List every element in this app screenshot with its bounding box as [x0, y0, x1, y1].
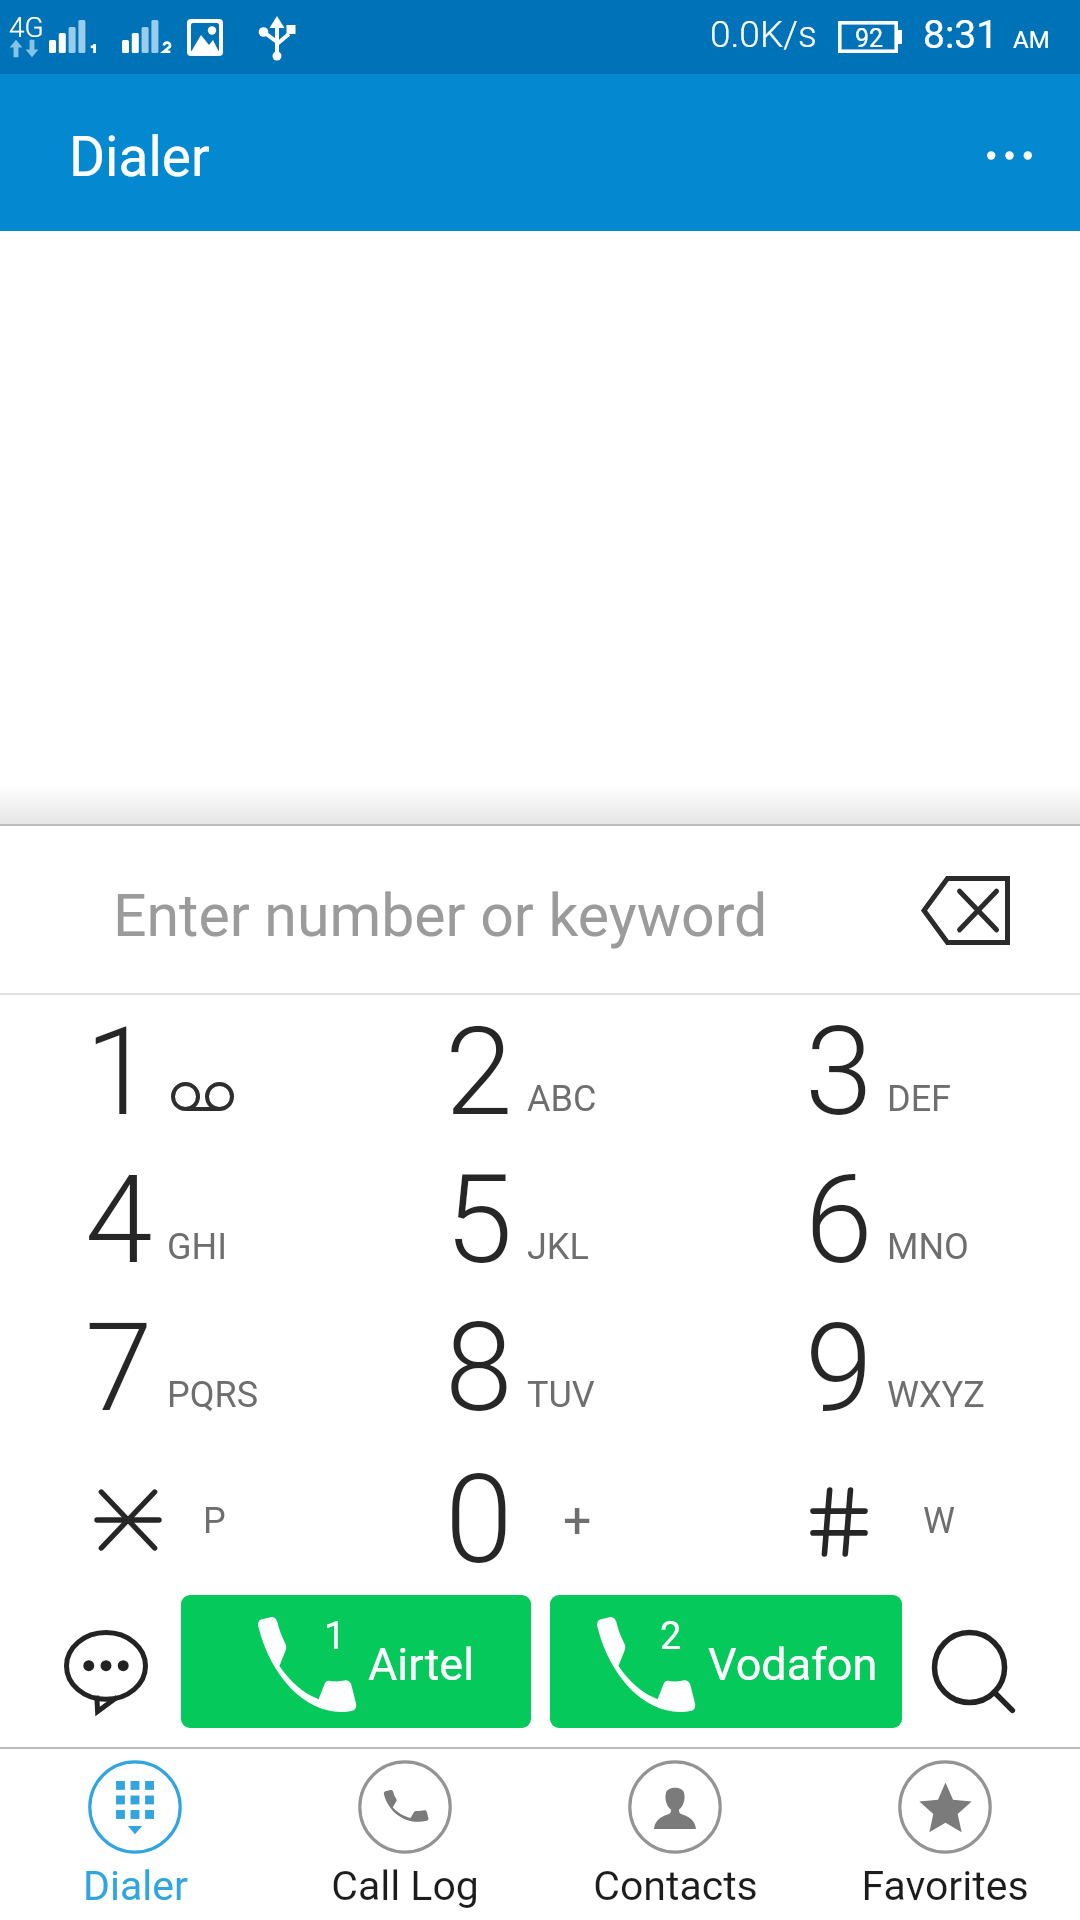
button[interactable]: 7 — [0, 1294, 360, 1442]
button[interactable]: 3 — [720, 998, 1080, 1146]
staticText: WXYZ — [887, 1374, 985, 1416]
staticText: 92 — [855, 24, 884, 53]
staticText: TUV — [527, 1374, 595, 1416]
staticText: ABC — [527, 1078, 597, 1120]
staticText: Contacts — [593, 1862, 758, 1910]
staticText: 1 — [324, 1614, 346, 1659]
button[interactable]: 5 — [360, 1146, 720, 1294]
staticText: PQRS — [167, 1374, 259, 1416]
staticText: 0.0K/s — [710, 13, 817, 56]
staticText: JKL — [527, 1226, 589, 1268]
button[interactable]: Backspace — [900, 850, 1030, 970]
staticText: Enter number or keyword — [113, 881, 768, 950]
staticText: GHI — [167, 1226, 227, 1268]
staticText: 2 — [445, 1001, 513, 1144]
button[interactable]: More options — [949, 92, 1069, 218]
staticText: 7 — [85, 1297, 153, 1440]
button[interactable]: Favorites — [810, 1749, 1080, 1920]
button[interactable]: Dialer — [0, 1749, 270, 1920]
staticText: 4 — [85, 1149, 153, 1292]
staticText: W — [923, 1500, 955, 1542]
button[interactable]: 1 — [181, 1595, 531, 1728]
button[interactable]: Call Log — [270, 1749, 540, 1920]
staticText: AM — [1013, 26, 1050, 54]
staticText: 5 — [445, 1149, 513, 1292]
staticText: Favorites — [861, 1862, 1029, 1910]
staticText: 3 — [805, 1001, 873, 1144]
staticText: 4G — [9, 11, 44, 44]
button[interactable]: P — [0, 1446, 360, 1594]
button[interactable]: 2 — [550, 1595, 902, 1728]
button[interactable]: Enter number or keyword — [0, 831, 1080, 991]
staticText: Call Log — [331, 1862, 479, 1910]
staticText: DEF — [887, 1078, 951, 1120]
staticText: 2 — [660, 1614, 682, 1659]
staticText: 0 — [445, 1449, 513, 1592]
staticText: 6 — [805, 1149, 873, 1292]
staticText: 1 — [85, 1001, 153, 1144]
staticText: Vodafon — [708, 1638, 878, 1691]
staticText: 9 — [805, 1297, 873, 1440]
staticText: MNO — [887, 1226, 969, 1268]
button[interactable]: 9 — [720, 1294, 1080, 1442]
staticText: Dialer — [83, 1862, 188, 1910]
staticText: + — [563, 1492, 592, 1551]
button[interactable]: 2 — [360, 998, 720, 1146]
button[interactable]: 6 — [720, 1146, 1080, 1294]
button[interactable]: 0 — [360, 1446, 720, 1594]
button[interactable]: W — [720, 1446, 1080, 1594]
staticText: P — [203, 1500, 226, 1542]
staticText: 8:31 — [923, 12, 999, 58]
button[interactable]: 8 — [360, 1294, 720, 1442]
button[interactable]: Messages — [30, 1600, 180, 1740]
staticText: Airtel — [368, 1638, 475, 1691]
button[interactable]: Contacts — [540, 1749, 810, 1920]
button[interactable]: 4 — [0, 1146, 360, 1294]
button[interactable]: 1 — [0, 998, 360, 1146]
button[interactable]: Search — [900, 1600, 1050, 1740]
staticText: 8 — [445, 1297, 513, 1440]
staticText: Dialer — [69, 125, 210, 189]
